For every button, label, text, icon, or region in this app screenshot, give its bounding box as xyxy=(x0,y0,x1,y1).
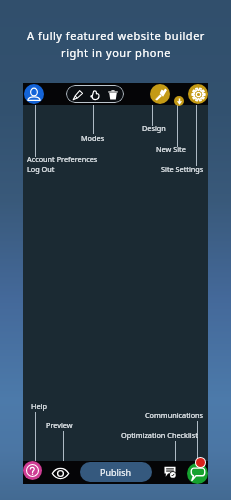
button[interactable]: Account Preferences xyxy=(24,84,44,104)
staticText: Site Settings xyxy=(161,164,204,174)
staticText: Modes xyxy=(81,133,105,143)
button[interactable]: Site Settings xyxy=(188,84,208,104)
button[interactable]: Publish xyxy=(80,462,152,482)
button[interactable]: Help xyxy=(23,461,42,480)
staticText: Design xyxy=(142,123,166,133)
staticText: right in your phone xyxy=(61,45,171,60)
button[interactable]: New Site xyxy=(174,96,184,106)
button[interactable]: Delete xyxy=(105,87,120,102)
staticText: A fully featured website builder xyxy=(27,28,205,43)
button[interactable]: Design xyxy=(150,84,170,104)
button[interactable]: Preview xyxy=(51,464,69,482)
staticText: New Site xyxy=(156,144,186,154)
button[interactable]: Pan mode xyxy=(88,87,103,102)
button[interactable]: Edit mode xyxy=(70,87,85,102)
staticText: Log Out xyxy=(27,164,55,174)
staticText: Preview xyxy=(46,420,73,430)
staticText: Communications xyxy=(145,410,204,420)
staticText: Account Preferences xyxy=(27,154,98,164)
button[interactable]: Optimization Checklist xyxy=(163,465,177,479)
staticText: Publish xyxy=(100,466,132,478)
staticText: Optimization Checklist xyxy=(121,430,198,440)
staticText: Help xyxy=(31,401,47,411)
button[interactable]: Communications xyxy=(187,463,208,484)
